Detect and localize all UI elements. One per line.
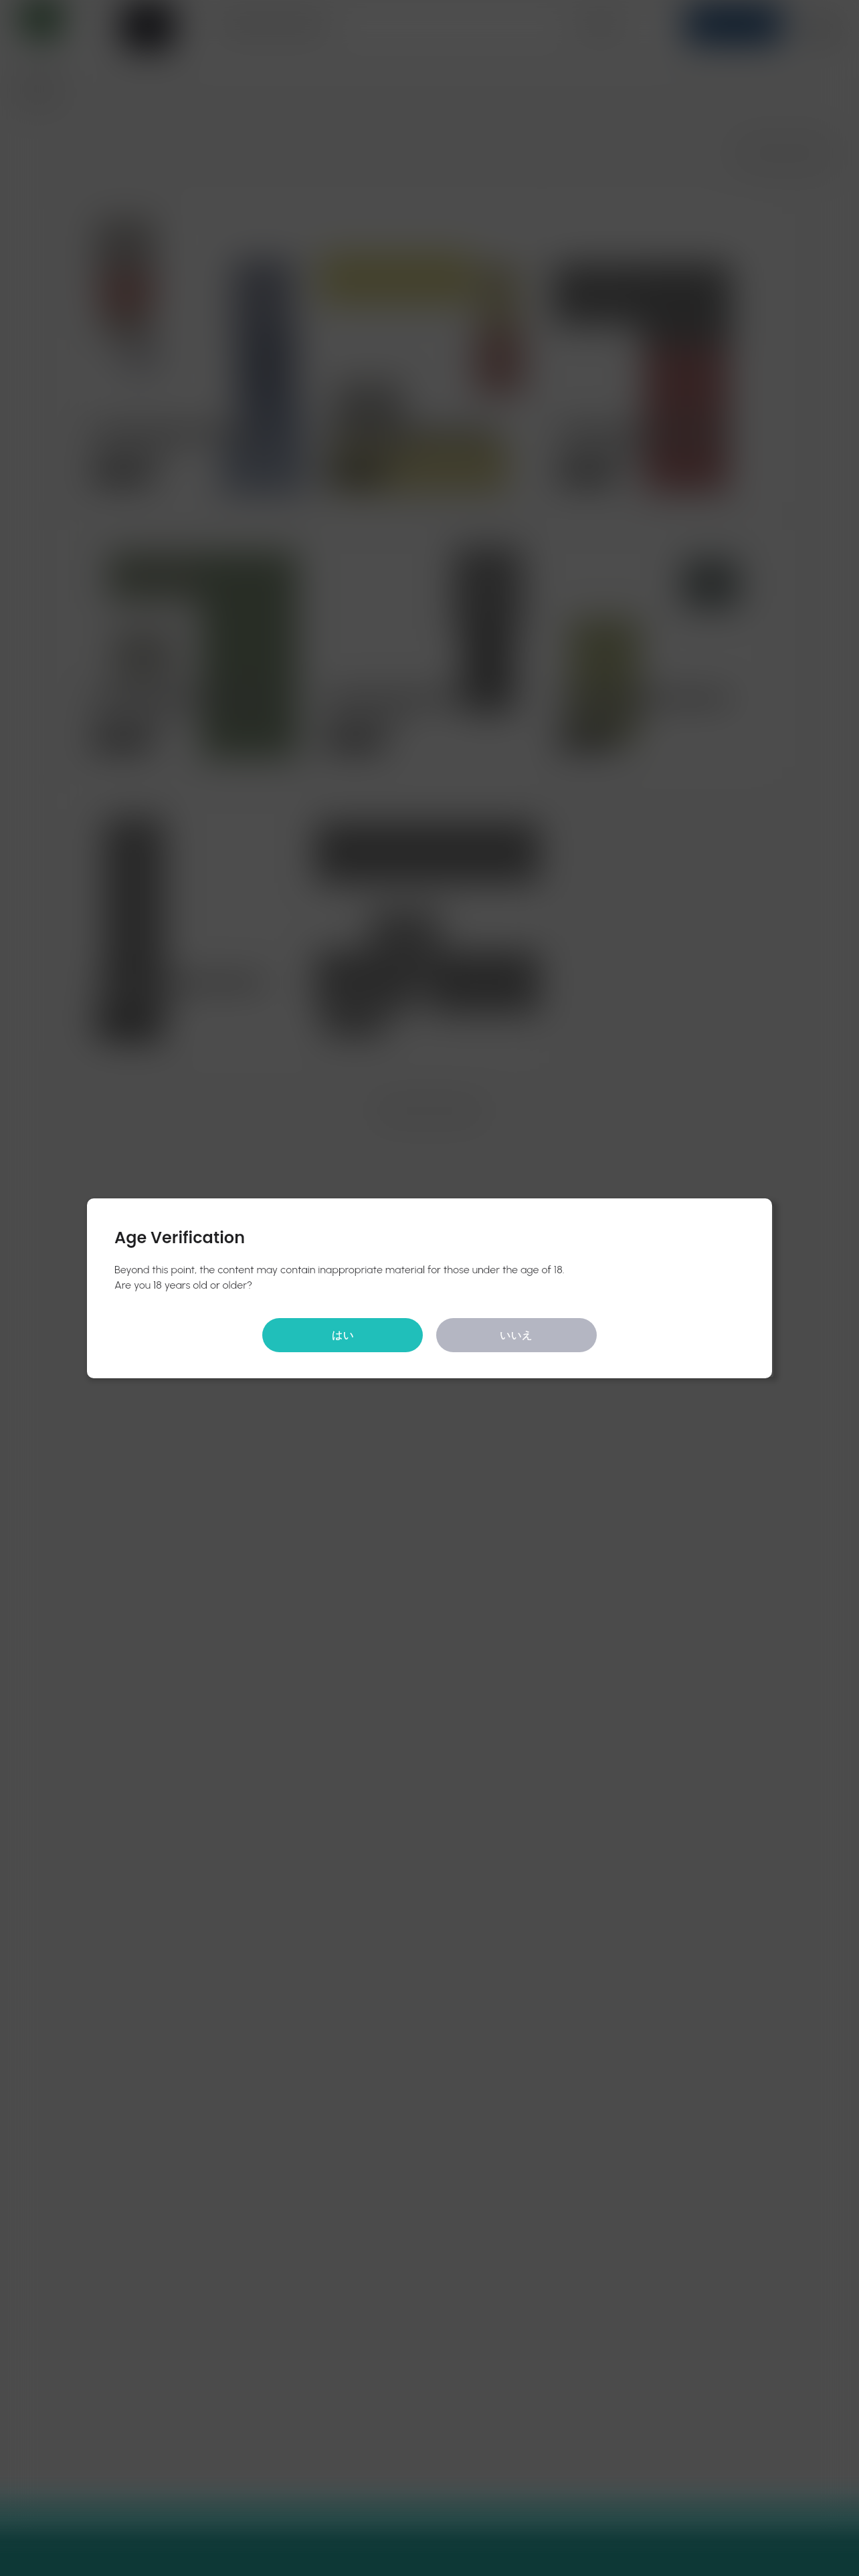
staticText: いいえ: [500, 1329, 533, 1342]
button[interactable]: はい: [262, 1318, 423, 1352]
staticText: Beyond this point, the content may conta…: [114, 1263, 565, 1291]
button[interactable]: いいえ: [436, 1318, 597, 1352]
button[interactable]: Dismiss dialog: [0, 0, 859, 2576]
staticText: はい: [332, 1329, 354, 1342]
staticText: Age Verification: [114, 1226, 246, 1249]
